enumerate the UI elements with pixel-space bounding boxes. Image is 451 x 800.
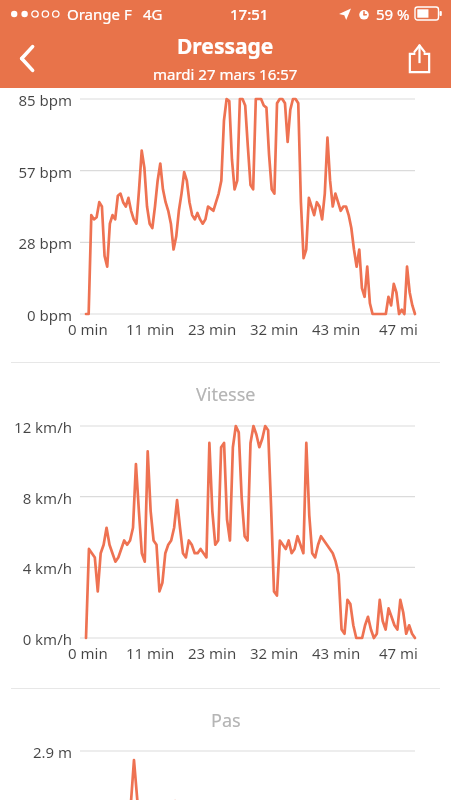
staticText: 23 min [188, 319, 237, 339]
staticText: 0 km/h [0, 629, 72, 649]
staticText: 4 km/h [0, 558, 72, 578]
staticText: 12 km/h [0, 417, 72, 437]
staticText: 23 min [188, 643, 237, 663]
staticText: 4G [143, 4, 163, 24]
staticText: 0 min [68, 643, 108, 663]
staticText: Vitesse [196, 382, 256, 407]
staticText: 32 min [250, 319, 299, 339]
staticText: 0 bpm [0, 305, 72, 325]
staticText: 47 mi [379, 643, 418, 663]
staticText: 0 min [68, 319, 108, 339]
staticText: 8 km/h [0, 488, 72, 508]
staticText: 47 mi [379, 319, 418, 339]
staticText: 43 min [312, 643, 361, 663]
staticText: Pas [211, 708, 241, 733]
staticText: 11 min [126, 643, 175, 663]
staticText: 11 min [126, 319, 175, 339]
button[interactable]: Back [4, 35, 50, 81]
staticText: 57 bpm [0, 162, 72, 182]
staticText: 28 bpm [0, 233, 72, 253]
staticText: 59 % [376, 4, 410, 24]
button[interactable]: Share [396, 35, 442, 81]
staticText: Orange F [67, 4, 132, 24]
staticText: 85 bpm [0, 90, 72, 110]
staticText: 17:51 [230, 4, 269, 24]
staticText: 32 min [250, 643, 299, 663]
staticText: 2.9 m [0, 742, 72, 762]
staticText: mardi 27 mars 16:57 [153, 64, 298, 84]
staticText: 43 min [312, 319, 361, 339]
staticText: Dressage [177, 32, 274, 61]
